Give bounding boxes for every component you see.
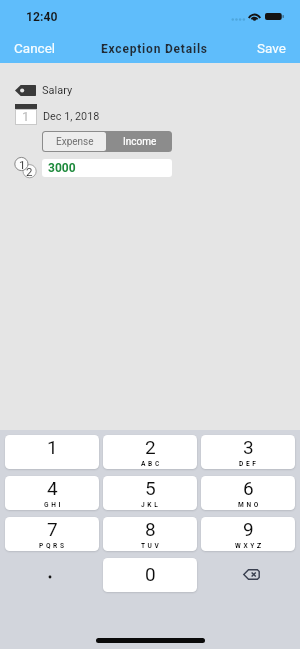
button[interactable]: Decimal point	[5, 558, 99, 592]
staticText: 3	[243, 436, 254, 458]
button[interactable]: 3000	[42, 159, 172, 177]
staticText: 2	[26, 165, 33, 178]
staticText: 8	[145, 518, 156, 540]
button[interactable]: 2	[103, 435, 197, 469]
staticText: 1	[47, 436, 58, 458]
staticText: 12:40	[26, 10, 58, 24]
staticText: Expense	[56, 136, 94, 148]
other: Battery	[265, 13, 284, 20]
staticText: Cancel	[14, 40, 56, 56]
staticText: D E F	[239, 460, 257, 468]
staticText: 5	[145, 477, 156, 499]
staticText: Exception Details	[101, 42, 208, 56]
button[interactable]: 4	[5, 476, 99, 510]
button[interactable]: Income	[107, 131, 172, 152]
staticText: T U V	[141, 542, 160, 550]
other: Wi-Fi	[248, 12, 261, 21]
staticText: Salary	[42, 84, 73, 97]
button[interactable]: 1	[0, 103, 300, 125]
staticText: 1	[22, 109, 30, 124]
button[interactable]: Backspace	[201, 558, 295, 592]
staticText: W X Y Z	[235, 542, 262, 550]
staticText: M N O	[238, 501, 259, 509]
staticText: A B C	[141, 460, 160, 468]
staticText: 1	[19, 158, 26, 171]
staticText: 3000	[48, 161, 76, 175]
button[interactable]: 3	[201, 435, 295, 469]
staticText: G H I	[44, 501, 61, 509]
button[interactable]: Salary	[0, 79, 300, 101]
button[interactable]: 6	[201, 476, 295, 510]
button[interactable]: 5	[103, 476, 197, 510]
staticText: 4	[47, 477, 58, 499]
staticText: Save	[257, 40, 286, 56]
staticText: Dec 1, 2018	[43, 110, 100, 123]
button[interactable]: 1	[5, 435, 99, 469]
button[interactable]: 9	[201, 517, 295, 551]
staticText: P Q R S	[39, 542, 65, 550]
button[interactable]: 7	[5, 517, 99, 551]
staticText: Income	[123, 136, 157, 148]
staticText: 6	[243, 477, 254, 499]
staticText: 0	[145, 563, 156, 585]
button[interactable]: Expense	[43, 132, 106, 151]
staticText: 9	[243, 518, 254, 540]
button[interactable]: 8	[103, 517, 197, 551]
button[interactable]: Cancel	[0, 35, 66, 61]
button[interactable]: 0	[103, 558, 197, 592]
staticText: 7	[47, 518, 58, 540]
staticText: 2	[145, 436, 156, 458]
button[interactable]: Save	[247, 35, 300, 61]
staticText: J K L	[141, 501, 159, 509]
